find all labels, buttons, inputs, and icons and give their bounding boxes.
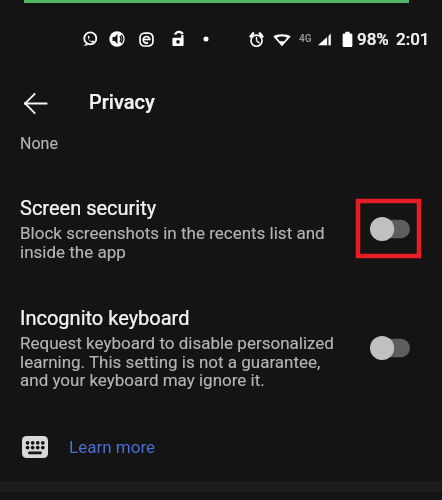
staticText: Screen security — [20, 196, 157, 219]
button[interactable]: Screen security — [0, 180, 442, 272]
button[interactable]: Learn more — [0, 424, 442, 470]
staticText: 2:01 — [396, 29, 430, 49]
staticText: Learn more — [69, 437, 156, 457]
button[interactable]: Incognito keyboard — [0, 290, 442, 400]
staticText: Privacy — [89, 90, 155, 113]
staticText: Incognito keyboard — [20, 306, 190, 329]
staticText: None — [20, 134, 58, 153]
button[interactable]: Screen security switch — [356, 199, 421, 258]
staticText: 98% — [357, 29, 389, 49]
staticText: Block screenshots in the recents list an… — [20, 223, 338, 262]
button[interactable]: Navigate up — [12, 80, 58, 126]
staticText: 4G — [299, 33, 312, 45]
button[interactable]: Incognito keyboard switch — [356, 318, 421, 377]
staticText: Request keyboard to disable personalized… — [20, 333, 350, 390]
